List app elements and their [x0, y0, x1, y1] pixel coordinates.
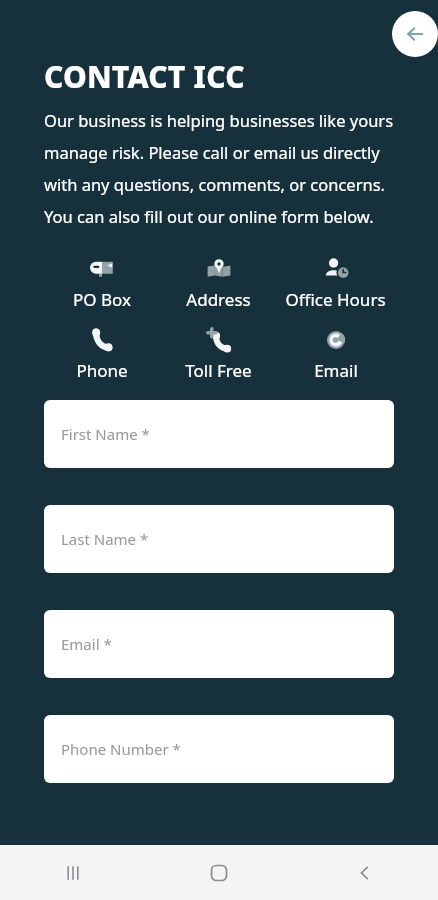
button[interactable]: Recent apps	[0, 845, 146, 900]
staticText: First Name *	[61, 424, 150, 444]
staticText: Phone Number *	[61, 739, 181, 759]
staticText: PO Box	[73, 288, 131, 311]
button[interactable]: Toll Free	[160, 321, 277, 386]
button[interactable]: Email *	[44, 610, 394, 678]
staticText: Office Hours	[285, 288, 386, 311]
button[interactable]: Email	[277, 321, 394, 386]
button[interactable]: PO Box	[44, 250, 160, 315]
button[interactable]: Address	[160, 250, 277, 315]
staticText: Phone	[76, 359, 128, 382]
button[interactable]: Office Hours	[277, 250, 394, 315]
button[interactable]: Last Name *	[44, 505, 394, 573]
button[interactable]: Phone	[44, 321, 160, 386]
button[interactable]: Home	[146, 845, 292, 900]
staticText: Email *	[61, 634, 112, 654]
staticText: Address	[186, 288, 251, 311]
button[interactable]: First Name *	[44, 400, 394, 468]
staticText: CONTACT ICC	[44, 56, 245, 97]
button[interactable]: Back	[292, 845, 438, 900]
button[interactable]: Phone Number *	[44, 715, 394, 783]
staticText: Toll Free	[185, 359, 252, 382]
button[interactable]: Back	[392, 11, 438, 57]
staticText: Email	[314, 359, 358, 382]
staticText: Our business is helping businesses like …	[44, 109, 394, 228]
staticText: Last Name *	[61, 529, 149, 549]
